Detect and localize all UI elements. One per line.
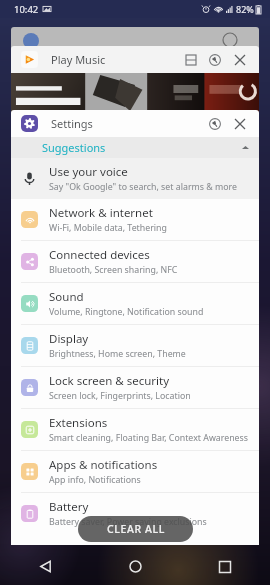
staticText: CLEAR ALL — [107, 522, 165, 536]
staticText: Sound — [49, 289, 84, 305]
button[interactable]: Network & internet — [21, 199, 249, 240]
button[interactable]: Battery — [21, 493, 249, 534]
staticText: Wi-Fi, Mobile data, Tethering — [49, 222, 167, 234]
staticText: Smart cleaning, Floating Bar, Context Aw… — [49, 432, 248, 444]
staticText: Volume, Ringtone, Notification sound — [49, 306, 204, 318]
staticText: Say "Ok Google" to search, set alarms & … — [49, 181, 237, 193]
button[interactable]: Pin app — [205, 50, 225, 70]
button[interactable]: Extensions — [21, 409, 249, 450]
button[interactable]: Close — [229, 49, 251, 71]
staticText: Settings — [51, 116, 93, 131]
staticText: Display — [49, 331, 89, 347]
staticText: Suggestions — [42, 140, 106, 155]
staticText: Connected devices — [49, 247, 150, 263]
button[interactable]: Split screen — [181, 50, 201, 70]
button[interactable]: Suggestions — [42, 137, 249, 158]
button[interactable]: Back — [0, 548, 90, 585]
button[interactable]: Close — [229, 113, 251, 135]
staticText: 10:42 — [14, 3, 39, 16]
staticText: Battery — [49, 499, 89, 515]
button[interactable]: Pin app — [205, 114, 225, 134]
staticText: Battery saver, Power saving exclusions — [49, 516, 207, 528]
staticText: Screen lock, Fingerprints, Location — [49, 390, 191, 402]
button[interactable]: Display — [21, 325, 249, 366]
staticText: Play Music — [51, 52, 106, 67]
button[interactable]: Sound — [21, 283, 249, 324]
button[interactable]: Use your voice — [21, 158, 249, 199]
staticText: Brightness, Home screen, Theme — [49, 348, 186, 360]
staticText: Apps & notifications — [49, 457, 158, 473]
staticText: 82% — [236, 3, 254, 15]
staticText: Bluetooth, Screen sharing, NFC — [49, 264, 178, 276]
button[interactable]: Home — [90, 548, 180, 585]
button[interactable] — [11, 27, 259, 67]
button[interactable]: Apps & notifications — [21, 451, 249, 492]
button[interactable]: Connected devices — [21, 241, 249, 282]
staticText: Use your voice — [49, 164, 128, 180]
button[interactable]: Recent apps — [180, 548, 270, 585]
button[interactable]: Lock screen & security — [21, 367, 249, 408]
button[interactable]: CLEAR ALL — [78, 516, 193, 542]
staticText: Lock screen & security — [49, 373, 170, 389]
staticText: App info, Notifications — [49, 474, 141, 486]
staticText: Network & internet — [49, 205, 153, 221]
staticText: Extensions — [49, 415, 108, 431]
